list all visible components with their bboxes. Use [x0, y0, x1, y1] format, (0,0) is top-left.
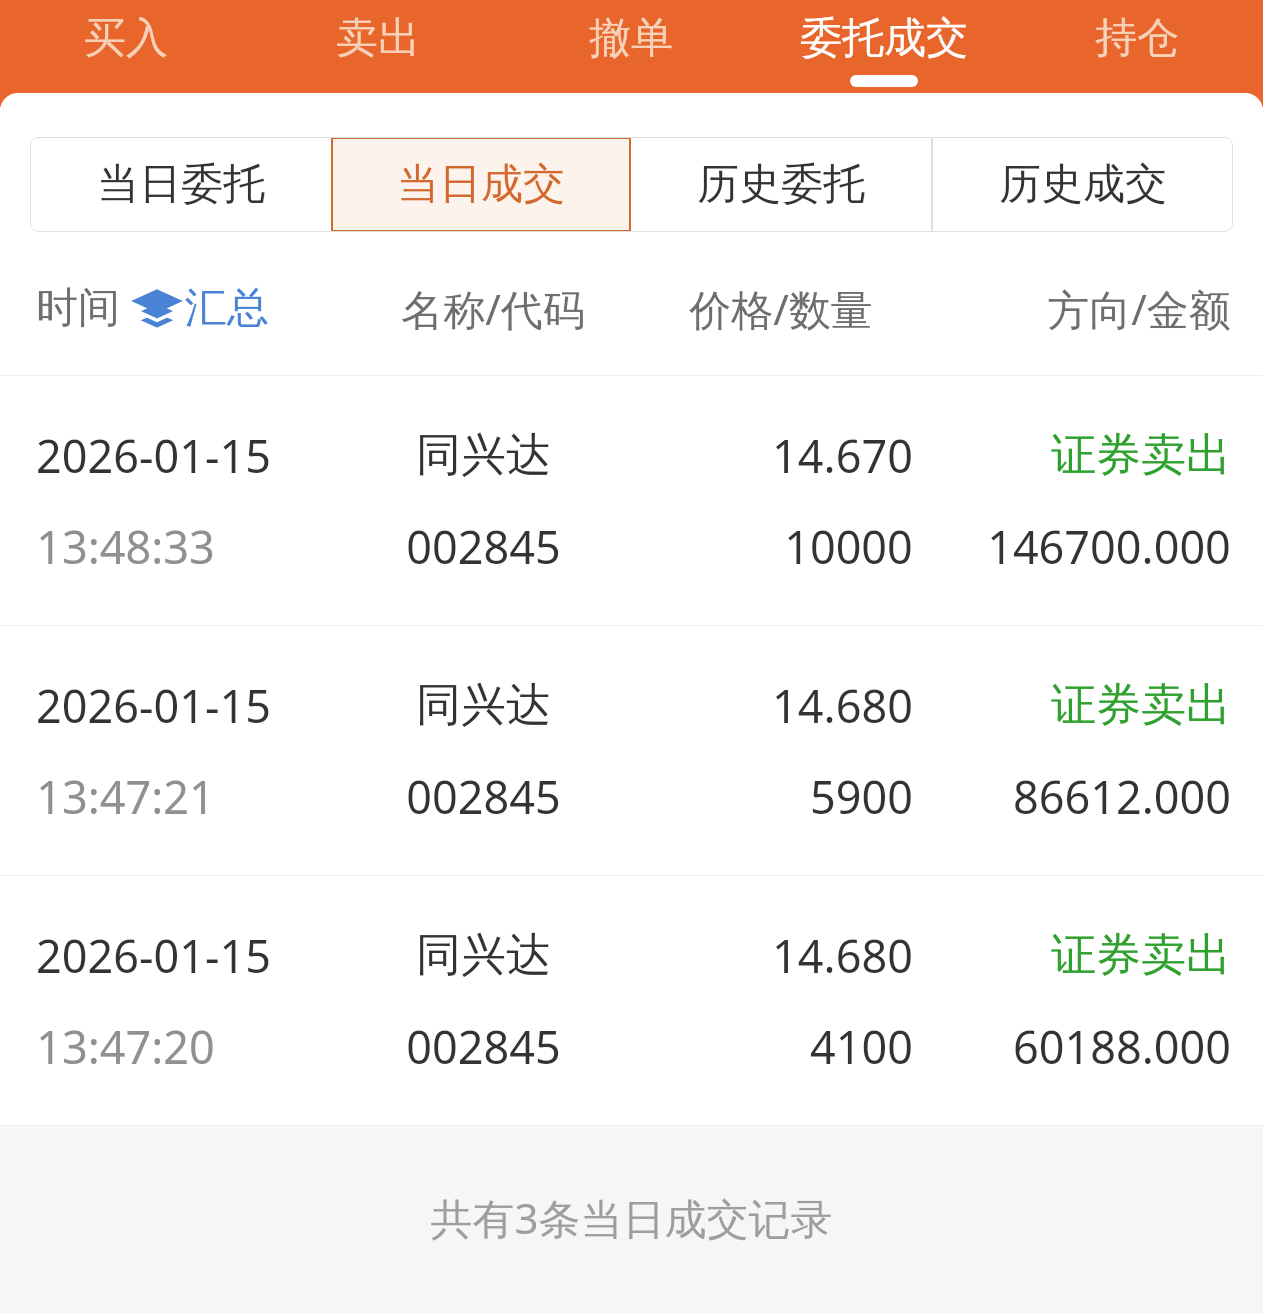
button[interactable]: 2026-01-15 — [0, 376, 1263, 626]
staticText: 委托成交 — [800, 12, 968, 65]
button[interactable]: 汇总 Summary — [134, 282, 269, 335]
staticText: 当日成交 — [397, 158, 565, 211]
staticText: 13:47:20 — [36, 1016, 215, 1077]
staticText: 证券卖出 — [1051, 427, 1231, 484]
button[interactable]: 卖出 — [252, 0, 504, 107]
staticText: 买入 — [84, 12, 168, 65]
staticText: 13:47:21 — [36, 766, 215, 827]
button[interactable]: 历史成交 — [933, 137, 1233, 232]
staticText: 4100 — [810, 1016, 913, 1077]
staticText: 002845 — [406, 1016, 561, 1077]
staticText: 卖出 — [336, 12, 420, 65]
staticText: 2026-01-15 — [36, 925, 271, 986]
button[interactable]: 买入 — [0, 0, 252, 107]
button[interactable]: 历史委托 — [631, 137, 931, 232]
staticText: 证券卖出 — [1051, 677, 1231, 734]
staticText: 时间 — [36, 282, 120, 335]
staticText: 当日委托 — [97, 158, 265, 211]
staticText: 14.670 — [772, 425, 913, 486]
staticText: 2026-01-15 — [36, 425, 271, 486]
button[interactable]: 2026-01-15 — [0, 876, 1263, 1126]
button[interactable]: 当日成交 — [331, 137, 631, 232]
staticText: 14.680 — [772, 675, 913, 736]
button[interactable]: 委托成交 — [757, 0, 1010, 107]
staticText: 13:48:33 — [36, 516, 215, 577]
button[interactable]: 2026-01-15 — [0, 626, 1263, 876]
staticText: 撤单 — [589, 12, 673, 65]
staticText: 5900 — [810, 766, 913, 827]
staticText: 002845 — [406, 516, 561, 577]
button[interactable]: 撤单 — [504, 0, 757, 107]
staticText: 历史委托 — [697, 158, 865, 211]
button[interactable]: 当日委托 — [30, 137, 331, 232]
staticText: 同兴达 — [416, 927, 551, 984]
staticText: 名称/代码 — [401, 280, 585, 337]
staticText: 同兴达 — [416, 427, 551, 484]
staticText: 146700.000 — [987, 516, 1231, 577]
staticText: 同兴达 — [416, 677, 551, 734]
staticText: 证券卖出 — [1051, 927, 1231, 984]
staticText: 历史成交 — [999, 158, 1167, 211]
staticText: 14.680 — [772, 925, 913, 986]
staticText: 2026-01-15 — [36, 675, 271, 736]
staticText: 86612.000 — [1013, 766, 1231, 827]
staticText: 10000 — [784, 516, 913, 577]
staticText: 002845 — [406, 766, 561, 827]
staticText: 方向/金额 — [1047, 280, 1231, 337]
staticText: 60188.000 — [1013, 1016, 1231, 1077]
staticText: 持仓 — [1095, 12, 1179, 65]
staticText: 汇总 — [185, 282, 269, 335]
staticText: 共有3条当日成交记录 — [430, 1189, 833, 1246]
button[interactable]: 持仓 — [1010, 0, 1263, 107]
staticText: 价格/数量 — [689, 280, 873, 337]
